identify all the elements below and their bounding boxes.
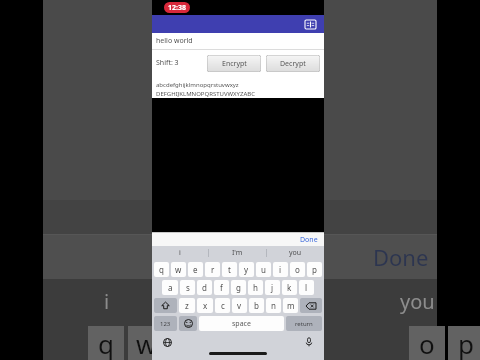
button[interactable]: a	[162, 280, 178, 295]
button[interactable]: f	[214, 280, 229, 295]
staticText: Encrypt	[222, 59, 247, 69]
button[interactable]: t	[222, 262, 237, 277]
button[interactable]: i	[152, 246, 208, 260]
button[interactable]: p	[307, 262, 322, 277]
staticText: e	[193, 264, 198, 275]
staticText: space	[232, 319, 251, 329]
button[interactable]: y	[239, 262, 254, 277]
staticText: d	[202, 282, 207, 293]
staticText: p	[458, 326, 474, 360]
button[interactable]: o	[290, 262, 305, 277]
staticText: you	[400, 288, 435, 315]
staticText: n	[271, 300, 276, 311]
staticText: w	[136, 326, 157, 360]
staticText: y	[244, 264, 249, 275]
button[interactable]: g	[231, 280, 246, 295]
button[interactable]: l	[299, 280, 314, 295]
staticText: w	[175, 264, 182, 275]
staticText: Done	[373, 242, 429, 272]
button[interactable]: Dictionary	[302, 16, 318, 32]
staticText: f	[220, 282, 223, 293]
button[interactable]: Change keyboard	[160, 335, 174, 349]
staticText: m	[287, 300, 295, 311]
button[interactable]: n	[266, 298, 281, 313]
staticText: o	[295, 264, 300, 275]
staticText: z	[185, 300, 189, 311]
button[interactable]: hello world	[152, 33, 324, 49]
staticText: v	[237, 300, 242, 311]
button[interactable]: d	[197, 280, 212, 295]
staticText: i	[104, 288, 110, 315]
staticText: Done	[300, 235, 318, 245]
staticText: t	[228, 264, 231, 275]
staticText: q	[98, 326, 114, 360]
button[interactable]: Done	[300, 235, 318, 245]
staticText: i	[179, 248, 181, 258]
staticText: u	[261, 264, 266, 275]
staticText: 12:38	[168, 3, 186, 13]
staticText: 123	[160, 320, 171, 328]
staticText: x	[203, 300, 208, 311]
button[interactable]: I'm	[209, 246, 266, 260]
staticText: I'm	[232, 248, 243, 258]
staticText: q	[159, 264, 164, 275]
button[interactable]: q	[154, 262, 169, 277]
button[interactable]: b	[249, 298, 264, 313]
button[interactable]: Encrypt	[207, 55, 261, 72]
staticText: c	[221, 300, 225, 311]
button[interactable]: e	[188, 262, 203, 277]
staticText: j	[271, 282, 274, 293]
staticText: i	[279, 264, 282, 275]
staticText: s	[186, 282, 190, 293]
button[interactable]: r	[205, 262, 220, 277]
staticText: DEFGHIJKLMNOPQRSTUVWXYZABC	[156, 90, 255, 98]
button[interactable]: Dictate	[302, 335, 316, 349]
button[interactable]: Decrypt	[266, 55, 320, 72]
staticText: r	[211, 264, 215, 275]
button[interactable]: 123	[154, 316, 177, 331]
button[interactable]: you	[267, 246, 324, 260]
staticText: o	[419, 326, 435, 360]
button[interactable]: h	[248, 280, 263, 295]
staticText: p	[312, 264, 317, 275]
staticText: abcdefghijklmnopqrstuvwxyz	[156, 81, 239, 89]
button[interactable]: Backspace	[300, 298, 322, 313]
staticText: b	[254, 300, 259, 311]
button[interactable]: Emoji	[179, 316, 197, 331]
button[interactable]: v	[232, 298, 247, 313]
button[interactable]: Shift	[154, 298, 177, 313]
button[interactable]: space	[199, 316, 284, 331]
button[interactable]: x	[197, 298, 213, 313]
staticText: l	[305, 282, 308, 293]
staticText: return	[295, 320, 313, 328]
button[interactable]: m	[283, 298, 298, 313]
staticText: a	[168, 282, 173, 293]
button[interactable]: j	[265, 280, 280, 295]
staticText: Decrypt	[280, 59, 306, 69]
staticText: k	[287, 282, 292, 293]
button[interactable]: s	[180, 280, 195, 295]
staticText: g	[236, 282, 241, 293]
staticText: h	[253, 282, 258, 293]
staticText: Shift: 3	[156, 58, 179, 68]
staticText: hello world	[156, 36, 193, 46]
button[interactable]: k	[282, 280, 297, 295]
button[interactable]: z	[179, 298, 195, 313]
button[interactable]: u	[256, 262, 271, 277]
staticText: you	[289, 248, 302, 258]
button[interactable]: return	[286, 316, 322, 331]
button[interactable]: c	[215, 298, 230, 313]
button[interactable]: w	[171, 262, 186, 277]
button[interactable]: i	[273, 262, 288, 277]
